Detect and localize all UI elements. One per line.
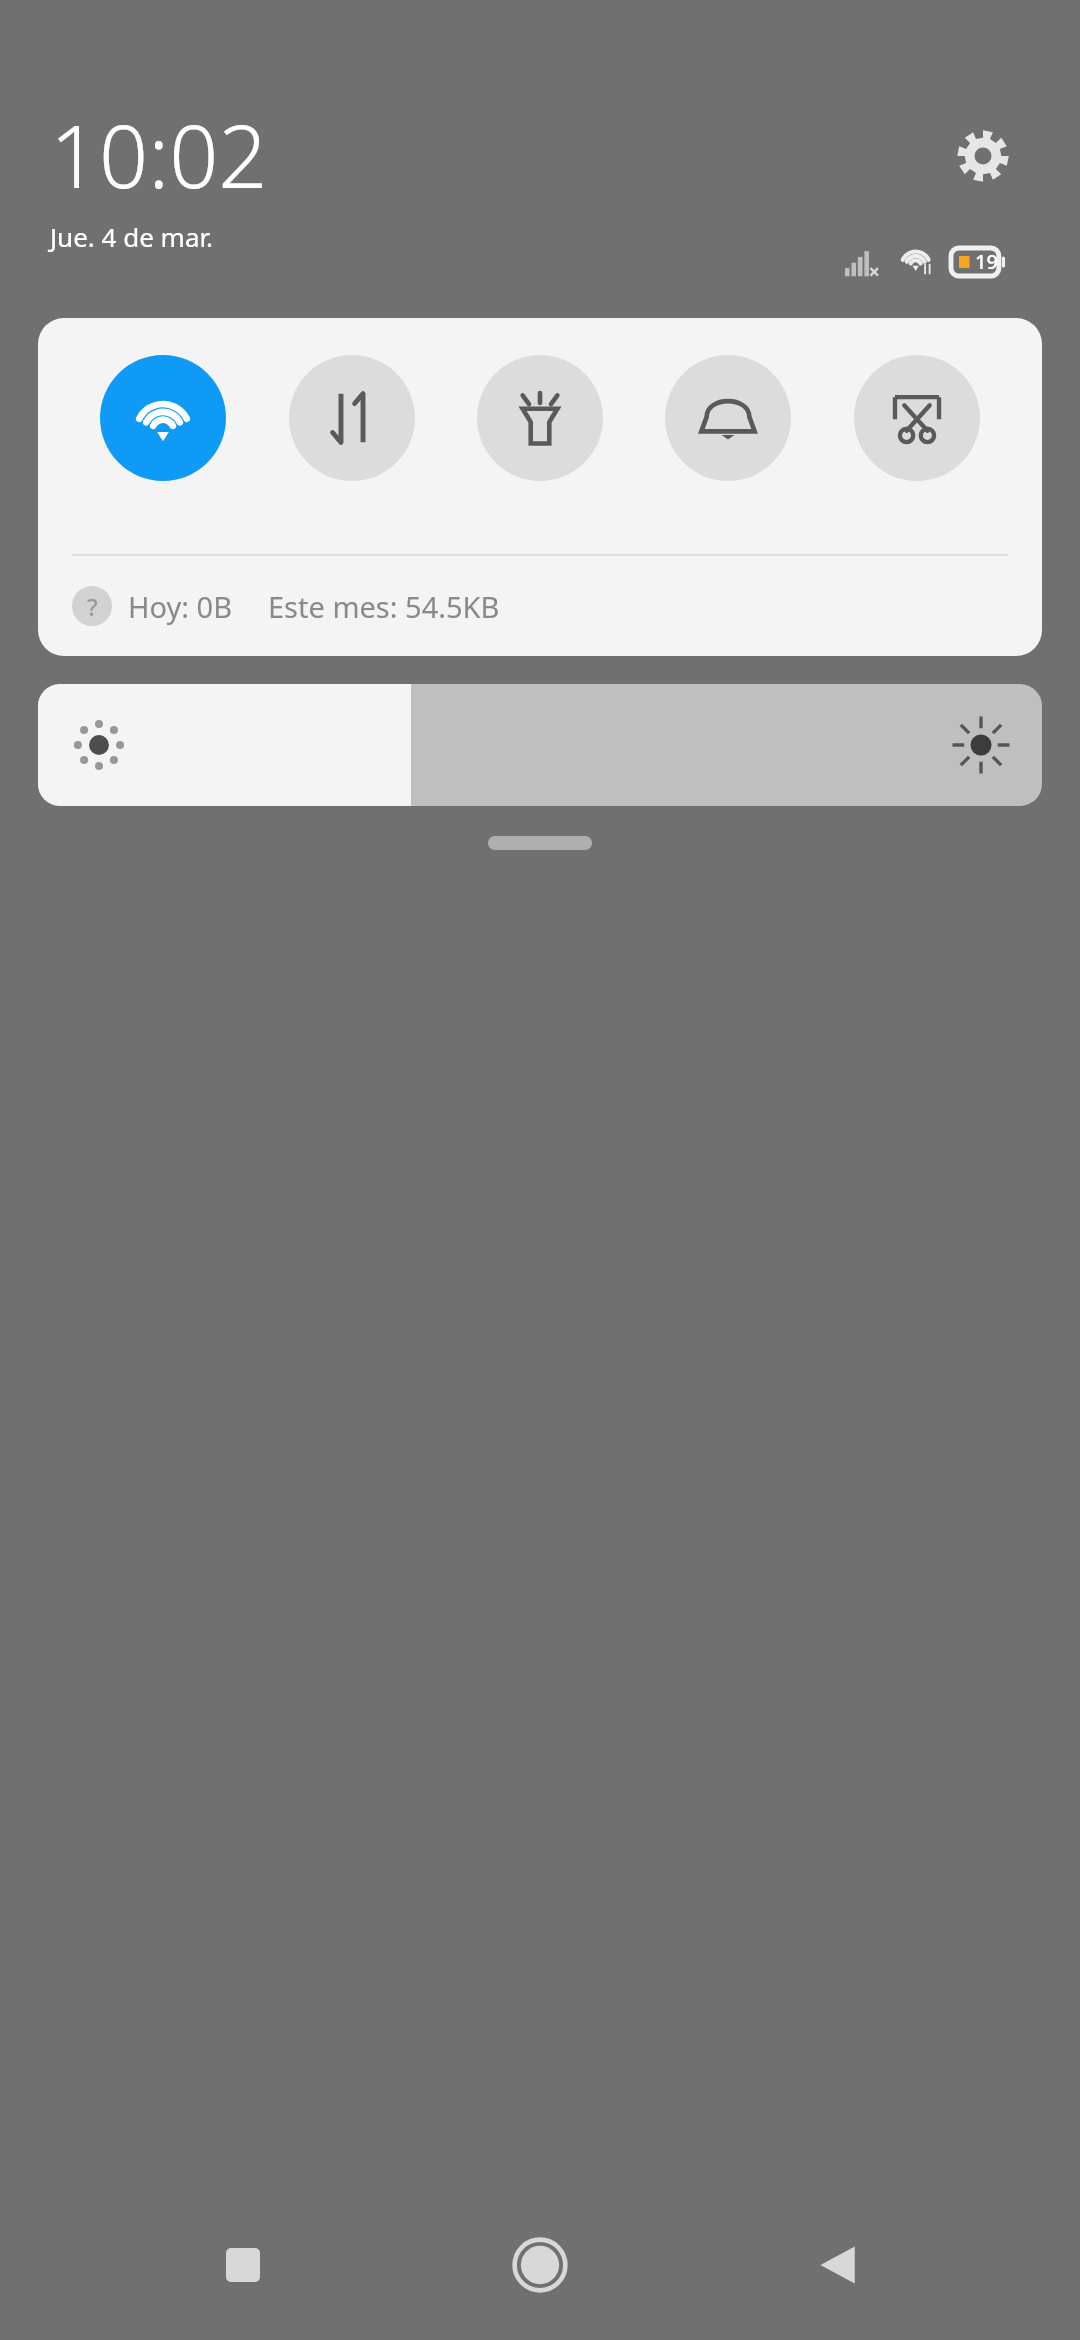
button[interactable]: Mobile data bbox=[289, 355, 415, 481]
button[interactable]: Expand quick settings bbox=[488, 836, 592, 850]
button[interactable]: Brightness bbox=[38, 684, 1042, 806]
button[interactable]: Back bbox=[783, 2210, 893, 2320]
button[interactable]: Wi-Fi bbox=[100, 355, 226, 481]
button[interactable]: ? bbox=[72, 586, 500, 626]
button[interactable]: Settings bbox=[955, 128, 1011, 184]
staticText: 19 bbox=[975, 248, 998, 275]
staticText: Hoy: 0B bbox=[128, 587, 232, 626]
button[interactable]: Home bbox=[485, 2210, 595, 2320]
button[interactable]: Flashlight bbox=[477, 355, 603, 481]
staticText: ? bbox=[87, 590, 98, 623]
button[interactable]: Screenshot bbox=[854, 355, 980, 481]
staticText: 10:02 bbox=[50, 96, 268, 213]
button[interactable]: Recents bbox=[188, 2210, 298, 2320]
staticText: Este mes: 54.5KB bbox=[268, 587, 500, 626]
button[interactable]: Do not disturb bbox=[665, 355, 791, 481]
staticText: Jue. 4 de mar. bbox=[50, 219, 214, 254]
